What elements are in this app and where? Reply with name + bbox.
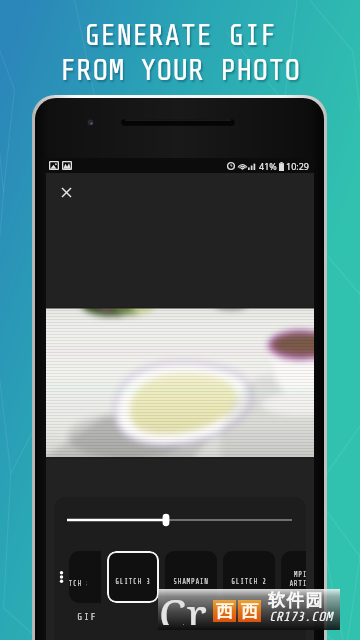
button[interactable]: GLITCH 2 xyxy=(223,551,275,603)
staticText: 西 xyxy=(216,601,233,622)
staticText: 软件园 xyxy=(268,590,324,611)
button[interactable]: SHAMPAIN xyxy=(165,551,217,603)
staticText: 41% xyxy=(259,160,277,172)
staticText: FROM YOUR PHOTO xyxy=(60,54,301,87)
button[interactable]: MPI ARTIF xyxy=(281,551,306,603)
staticText: 西 xyxy=(241,601,258,622)
staticText: SHAMPAIN xyxy=(173,578,209,586)
button[interactable]: GLITCH 3 xyxy=(107,551,159,603)
staticText: 10:29 xyxy=(286,160,310,172)
staticText: Cr xyxy=(159,584,207,625)
staticText: MPI ARTIF xyxy=(289,571,306,588)
staticText: GLITCH 8 xyxy=(69,580,87,588)
staticText: GLITCH 2 xyxy=(231,578,267,586)
staticText: GIF xyxy=(77,611,98,622)
button[interactable]: More filters xyxy=(54,551,68,603)
button[interactable]: GLITCH 8 xyxy=(69,551,101,603)
staticText: GLITCH 3 xyxy=(115,578,151,586)
button[interactable]: Close xyxy=(48,174,84,210)
staticText: GENERATE GIF xyxy=(84,19,277,52)
staticText: CR173.COM xyxy=(269,609,333,624)
